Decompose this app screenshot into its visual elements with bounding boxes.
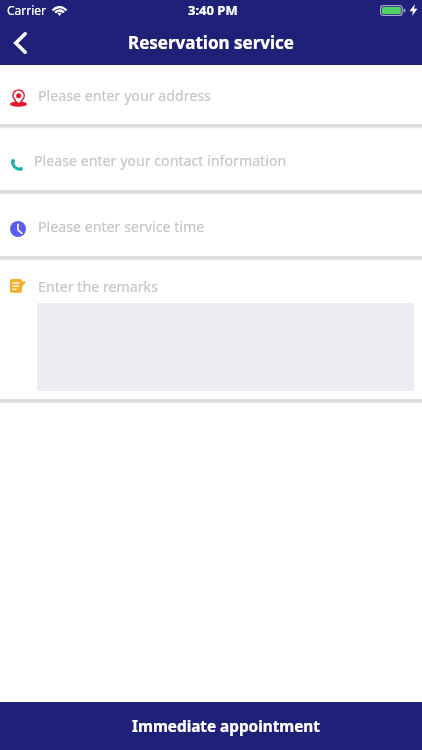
button[interactable]: Back <box>0 20 40 65</box>
staticText: Enter the remarks <box>38 277 158 296</box>
staticText: Please enter your address <box>38 86 211 105</box>
button[interactable]: Please enter your address <box>0 65 422 124</box>
staticText: Reservation service <box>128 31 295 54</box>
button[interactable]: Please enter service time <box>0 195 422 256</box>
staticText: Please enter service time <box>38 217 205 236</box>
staticText: Carrier <box>7 2 47 18</box>
staticText: Please enter your contact information <box>34 151 287 170</box>
staticText: Immediate appointment <box>132 716 320 737</box>
button[interactable]: Please enter your contact information <box>0 129 422 190</box>
staticText: 3:40 PM <box>188 1 238 19</box>
button[interactable]: Immediate appointment <box>0 702 422 750</box>
